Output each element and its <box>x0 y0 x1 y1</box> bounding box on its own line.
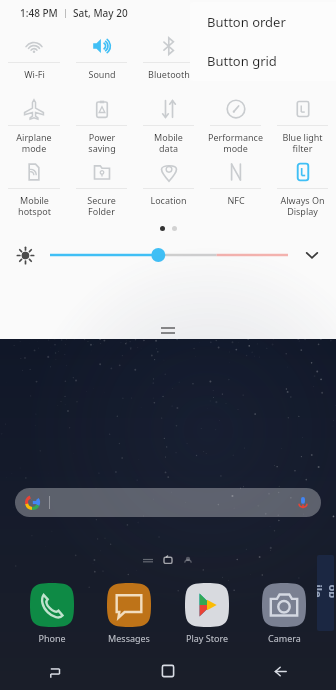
staticText: Always On Display <box>280 194 325 217</box>
button[interactable]: Secure Folder <box>68 156 135 219</box>
staticText: Phone <box>38 632 66 644</box>
button[interactable]: Brightness <box>0 237 50 273</box>
staticText: Mobile hotspot <box>18 194 51 217</box>
staticText: Performance mode <box>208 131 263 154</box>
staticText: Blue light filter <box>282 131 323 154</box>
staticText: Messages <box>108 632 150 644</box>
button[interactable]: Button order <box>190 2 336 41</box>
staticText: Wi-Fi <box>24 68 45 80</box>
staticText: Sound <box>88 68 116 80</box>
button[interactable]: Wi-Fi <box>0 30 68 93</box>
staticText: Button order <box>207 13 286 31</box>
button[interactable]: NFC <box>202 156 269 219</box>
staticText: Play Store <box>186 632 228 644</box>
button[interactable]: Airplane mode <box>0 93 68 156</box>
button[interactable] <box>50 237 288 273</box>
staticText: Bluetooth <box>148 68 190 80</box>
button[interactable]: Messages <box>94 583 164 644</box>
button[interactable]: Camera <box>249 583 319 644</box>
staticText: Location <box>150 194 187 206</box>
button[interactable]: Play Store <box>172 583 242 644</box>
staticText: Camera <box>268 632 301 644</box>
staticText: Button grid <box>207 52 277 70</box>
button[interactable]: Location <box>135 156 202 219</box>
staticText: Sat, May 20 <box>73 6 128 20</box>
button[interactable]: Bluetooth <box>135 30 202 93</box>
button[interactable]: Sound <box>68 30 135 93</box>
button[interactable]: Phone <box>17 583 87 644</box>
button[interactable]: Mobile data <box>135 93 202 156</box>
button[interactable]: Flashlight <box>269 30 336 93</box>
button[interactable] <box>15 488 321 517</box>
button[interactable]: Recents <box>0 652 112 690</box>
button[interactable]: Mobile hotspot <box>0 156 68 219</box>
button[interactable]: Expand <box>288 237 336 273</box>
button[interactable]: Power saving <box>68 93 135 156</box>
staticText: Secure Folder <box>87 194 116 217</box>
button[interactable]: Portrait <box>202 30 269 93</box>
button[interactable]: Performance mode <box>202 93 269 156</box>
button[interactable]: Button grid <box>190 41 336 80</box>
staticText: NFC <box>227 194 245 206</box>
staticText: 1:48 PM <box>20 6 58 20</box>
button[interactable]: Home <box>112 652 224 690</box>
staticText: Airplane mode <box>16 131 52 154</box>
button[interactable]: Always On Display <box>269 156 336 219</box>
button[interactable]: Blue light filter <box>269 93 336 156</box>
staticText: Mobile data <box>154 131 183 154</box>
button[interactable]: Back <box>224 652 336 690</box>
staticText: mobile.ir <box>317 584 334 601</box>
staticText: Power saving <box>88 131 116 154</box>
